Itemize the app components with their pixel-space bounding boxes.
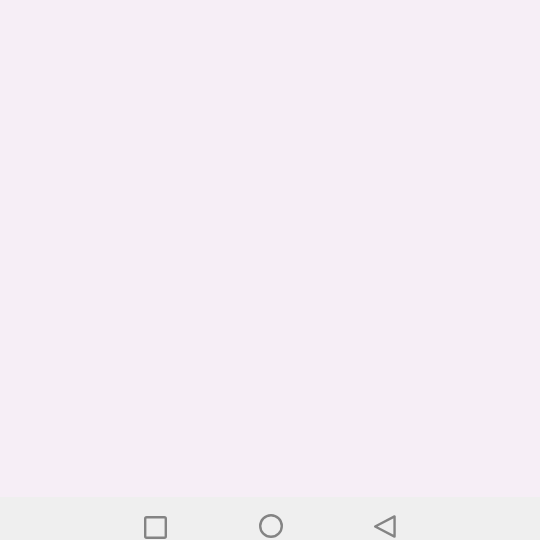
button[interactable]: Back [327, 497, 442, 540]
button[interactable]: Recent apps [98, 497, 213, 540]
button[interactable]: Home [213, 497, 328, 540]
